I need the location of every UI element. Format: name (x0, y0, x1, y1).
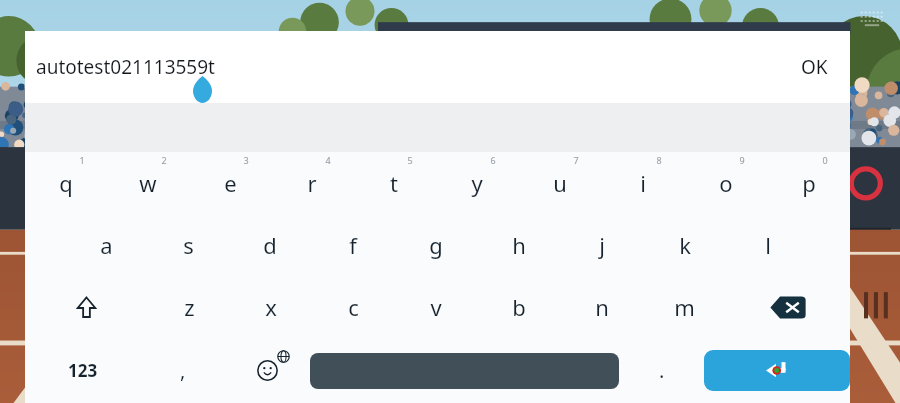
button[interactable]: Keyboard indicator (860, 11, 884, 28)
staticText: e (224, 168, 237, 198)
staticText: k (679, 230, 691, 260)
staticText: OK (801, 54, 828, 80)
staticText: 6 (490, 154, 496, 166)
staticText: 5 (407, 154, 413, 166)
button[interactable]: , (140, 338, 225, 403)
staticText: 9 (739, 154, 745, 166)
staticText: r (307, 168, 317, 198)
staticText: z (184, 292, 195, 322)
staticText: j (599, 230, 605, 260)
button[interactable]: m (643, 276, 726, 338)
staticText: 2 (161, 154, 167, 166)
button[interactable]: y (435, 152, 518, 214)
button[interactable]: Backspace (726, 276, 850, 338)
staticText: o (719, 168, 733, 198)
staticText: l (765, 230, 771, 260)
button[interactable]: OK (793, 46, 836, 88)
button[interactable]: l (726, 214, 809, 276)
button[interactable]: z (148, 276, 230, 338)
staticText: p (802, 168, 816, 198)
staticText: 4 (325, 154, 331, 166)
button[interactable]: g (394, 214, 477, 276)
staticText: x (265, 292, 277, 322)
button[interactable]: t (353, 152, 435, 214)
staticText: 123 (68, 359, 98, 382)
staticText: c (348, 292, 359, 322)
button[interactable]: h (477, 214, 560, 276)
button[interactable]: Emoji (225, 338, 310, 403)
staticText: d (263, 230, 277, 260)
button[interactable]: p (767, 152, 850, 214)
button[interactable]: a (65, 214, 147, 276)
staticText: 7 (573, 154, 579, 166)
button[interactable]: n (560, 276, 643, 338)
staticText: m (674, 292, 695, 322)
button[interactable]: v (394, 276, 477, 338)
button[interactable]: 123 (25, 338, 140, 403)
button[interactable]: k (643, 214, 726, 276)
button[interactable]: c (312, 276, 394, 338)
staticText: v (430, 292, 442, 322)
staticText: . (659, 357, 665, 384)
staticText: w (139, 168, 157, 198)
staticText: f (349, 230, 357, 260)
staticText: b (512, 292, 526, 322)
button[interactable]: . (619, 338, 704, 403)
staticText: 8 (656, 154, 662, 166)
staticText: a (100, 230, 113, 260)
button[interactable]: b (477, 276, 560, 338)
button[interactable]: d (229, 214, 311, 276)
staticText: 3 (243, 154, 249, 166)
staticText: u (553, 168, 567, 198)
button[interactable]: j (560, 214, 643, 276)
button[interactable]: s (147, 214, 229, 276)
staticText: 1 (79, 154, 85, 166)
button[interactable]: e (189, 152, 271, 214)
button[interactable]: o (684, 152, 767, 214)
staticText: y (471, 168, 483, 198)
staticText: , (180, 357, 186, 384)
staticText: h (512, 230, 526, 260)
button[interactable]: w (107, 152, 189, 214)
staticText: 0 (822, 154, 828, 166)
staticText: n (595, 292, 609, 322)
button[interactable]: f (311, 214, 394, 276)
staticText: s (183, 230, 194, 260)
button[interactable]: q (25, 152, 107, 214)
staticText: t (390, 168, 398, 198)
staticText: q (59, 168, 73, 198)
staticText: i (640, 168, 646, 198)
button[interactable]: Shift (25, 276, 148, 338)
button[interactable]: x (230, 276, 312, 338)
button[interactable]: Enter (704, 350, 850, 391)
staticText: g (429, 230, 443, 260)
button[interactable]: u (518, 152, 601, 214)
button[interactable]: r (271, 152, 353, 214)
button[interactable]: Space (310, 353, 619, 389)
staticText: autotest021113559t (36, 54, 215, 80)
button[interactable]: i (601, 152, 684, 214)
button[interactable]: autotest021113559t (36, 54, 215, 80)
